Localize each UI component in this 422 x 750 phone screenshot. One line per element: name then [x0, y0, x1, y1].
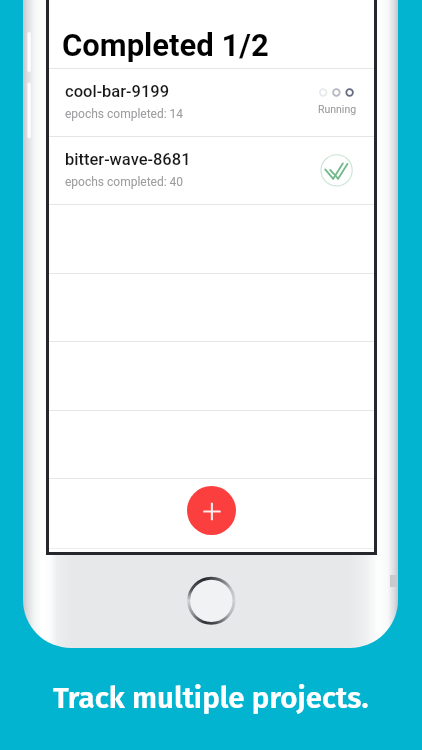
staticText: bitter-wave-8681: [65, 150, 191, 169]
button[interactable]: cool-bar-9199: [49, 68, 374, 136]
staticText: Track multiple projects.: [53, 680, 369, 715]
button[interactable]: bitter-wave-8681: [49, 136, 374, 204]
staticText: cool-bar-9199: [65, 82, 170, 101]
button[interactable]: Add project: [187, 486, 236, 535]
staticText: Running: [318, 103, 357, 115]
staticText: epochs completed: 14: [65, 107, 184, 121]
staticText: Completed 1/2: [62, 27, 269, 63]
staticText: epochs completed: 40: [65, 175, 184, 189]
